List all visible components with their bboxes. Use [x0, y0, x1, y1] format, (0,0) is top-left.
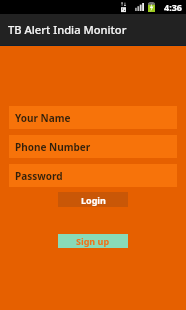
other: Signal strength: [135, 3, 144, 11]
staticText: TB Alert India Monitor: [8, 22, 127, 37]
other: Mobile data 3G: [121, 2, 126, 13]
button[interactable]: Your Name: [9, 106, 177, 129]
staticText: Phone Number: [15, 140, 91, 154]
staticText: Your Name: [15, 111, 71, 125]
button[interactable]: Phone Number: [9, 135, 177, 158]
staticText: Password: [15, 169, 63, 183]
other: Battery charging: [148, 2, 155, 12]
staticText: 4:36: [164, 1, 182, 13]
button[interactable]: Sign up: [58, 234, 128, 248]
button[interactable]: Password: [9, 164, 177, 187]
button[interactable]: TB Alert India Monitor: [0, 14, 186, 45]
staticText: Sign up: [76, 235, 110, 247]
button[interactable]: Login: [58, 192, 128, 207]
staticText: Login: [81, 194, 106, 206]
